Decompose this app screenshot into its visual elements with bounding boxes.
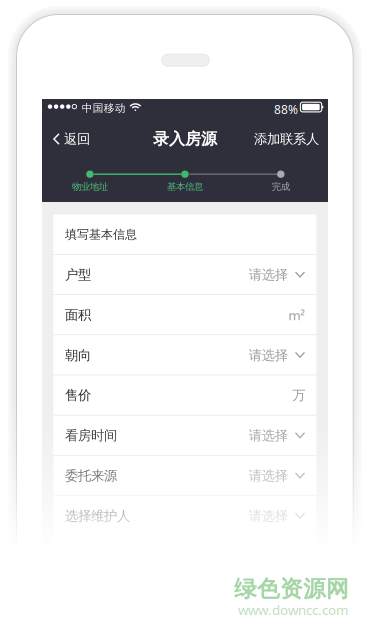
- staticText: 请选择: [249, 468, 288, 484]
- button[interactable]: 选择维护人: [53, 496, 316, 536]
- staticText: 返回: [64, 131, 90, 147]
- staticText: m²: [288, 306, 305, 324]
- staticText: 基本信息: [167, 181, 203, 192]
- button[interactable]: 户型: [53, 255, 316, 295]
- staticText: www.downcc.com: [238, 601, 348, 619]
- staticText: 完成: [272, 181, 290, 192]
- button[interactable]: 面积: [53, 295, 316, 335]
- staticText: 请选择: [249, 347, 288, 363]
- staticText: 物业地址: [72, 181, 108, 192]
- staticText: 委托来源: [65, 468, 117, 484]
- staticText: 绿色资源网: [234, 575, 349, 603]
- staticText: 万: [292, 387, 305, 404]
- staticText: 中国移动: [82, 102, 126, 115]
- button[interactable]: 看房时间: [53, 415, 316, 456]
- staticText: 请选择: [249, 508, 288, 524]
- staticText: 看房时间: [65, 427, 117, 444]
- button[interactable]: 返回: [42, 116, 100, 162]
- staticText: 选择维护人: [65, 508, 130, 524]
- staticText: 请选择: [249, 427, 288, 444]
- staticText: 请选择: [249, 267, 288, 283]
- button[interactable]: 售价: [53, 375, 316, 415]
- staticText: 售价: [65, 387, 91, 404]
- staticText: 面积: [65, 307, 91, 323]
- staticText: 填写基本信息: [65, 227, 137, 242]
- button[interactable]: 委托来源: [53, 456, 316, 496]
- staticText: 录入房源: [153, 129, 217, 149]
- staticText: 88%: [274, 101, 298, 117]
- button[interactable]: 添加联系人: [244, 116, 328, 162]
- staticText: 添加联系人: [254, 131, 319, 147]
- button[interactable]: 朝向: [53, 335, 316, 375]
- staticText: 朝向: [65, 347, 91, 363]
- staticText: 户型: [65, 267, 91, 283]
